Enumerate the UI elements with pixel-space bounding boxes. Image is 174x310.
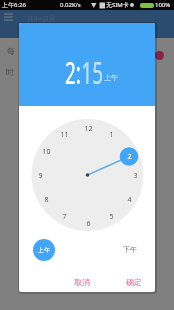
staticText: 时 [6, 67, 14, 77]
button[interactable]: 下午 [117, 241, 143, 257]
button[interactable]: 确定 [117, 272, 151, 292]
staticText: 100% [155, 1, 171, 9]
staticText: 无SIM卡 [106, 1, 129, 9]
staticText: 闹钟设置 [28, 14, 56, 23]
staticText: 下午 [123, 245, 137, 254]
staticText: 7 [62, 212, 67, 222]
staticText: 上午6:26 [2, 1, 26, 9]
staticText: 1 [109, 130, 114, 140]
staticText: 12 [84, 124, 93, 134]
staticText: 9 [38, 171, 43, 181]
staticText: 每 [7, 46, 15, 56]
staticText: 上午 [38, 246, 50, 254]
staticText: 2: [65, 52, 81, 93]
staticText: 确定 [126, 277, 142, 287]
staticText: 取消 [74, 277, 90, 287]
staticText: 3 [133, 171, 138, 181]
staticText: 0.02K/s [60, 1, 81, 9]
button[interactable]: 2: [19, 23, 155, 106]
staticText: 4 [127, 195, 132, 205]
staticText: 10 [42, 147, 51, 157]
staticText: 上午 [104, 73, 118, 82]
staticText: 8 [44, 195, 49, 205]
staticText: 11 [60, 130, 69, 140]
staticText: 15 [81, 52, 103, 93]
button[interactable]: 上午 [33, 239, 55, 261]
button[interactable]: 取消 [65, 272, 99, 292]
staticText: 2 [127, 152, 132, 162]
staticText: 5 [109, 212, 114, 222]
staticText: 6 [86, 219, 91, 229]
